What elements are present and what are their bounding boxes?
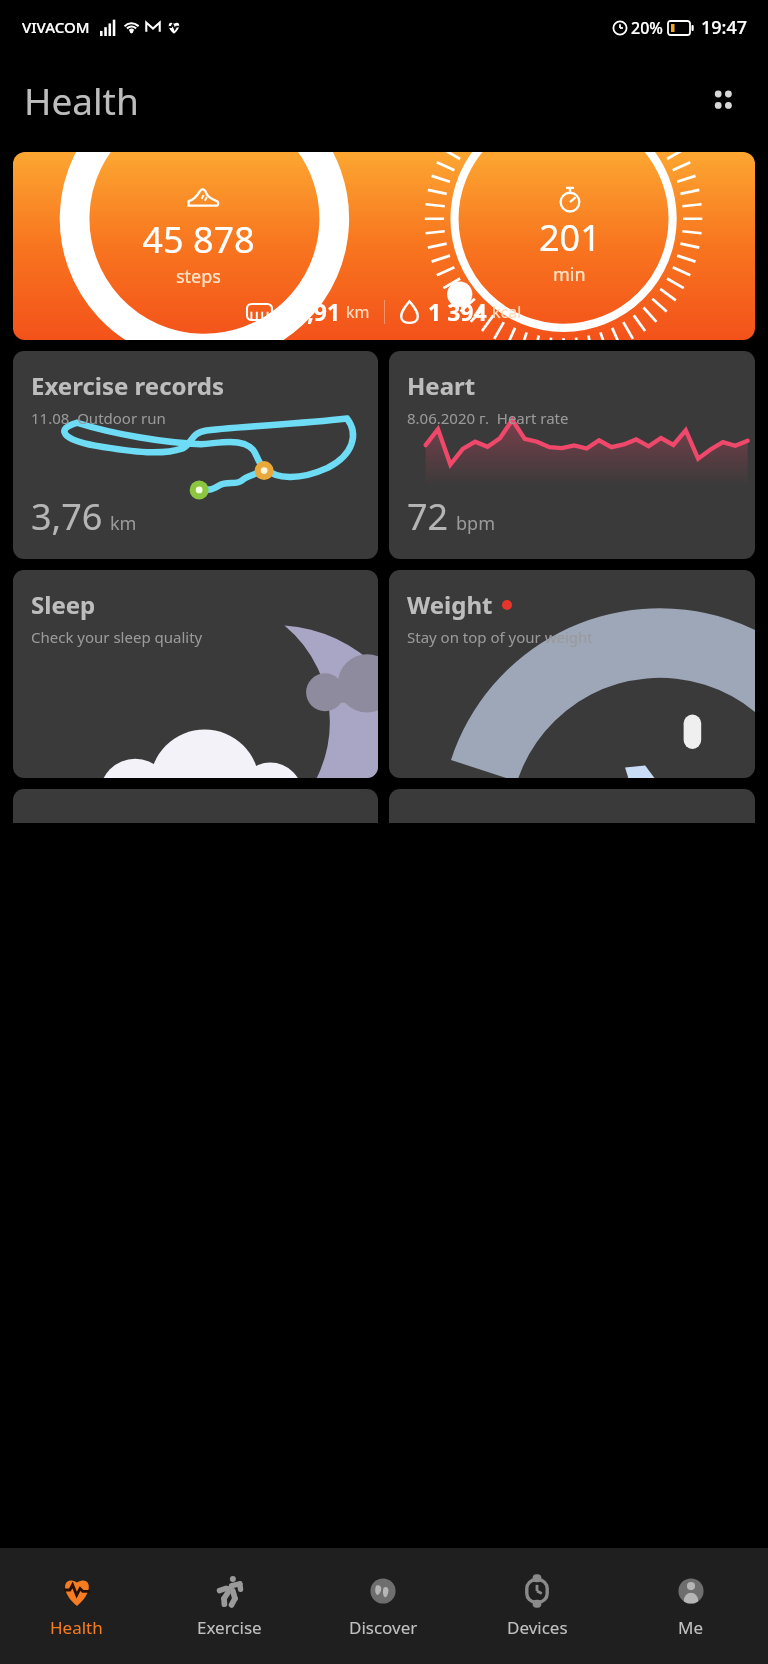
button[interactable] — [389, 789, 755, 823]
staticText: 72 — [407, 492, 449, 541]
staticText: kcal — [492, 301, 522, 323]
staticText: min — [553, 262, 586, 287]
button[interactable]: Sleep — [13, 570, 378, 778]
staticText: 45 878 — [142, 215, 255, 264]
staticText: Sleep — [31, 588, 96, 621]
button[interactable]: Health — [0, 1548, 153, 1664]
staticText: Me — [678, 1616, 704, 1639]
staticText: Health — [24, 75, 139, 125]
staticText: Weight — [407, 588, 493, 621]
staticText: Stay on top of your weight — [407, 627, 593, 647]
button[interactable]: 45 878 — [13, 152, 755, 340]
staticText: 19:47 — [701, 15, 748, 40]
staticText: steps — [176, 264, 221, 289]
button[interactable]: Exercise — [153, 1548, 306, 1664]
staticText: Discover — [349, 1616, 418, 1639]
staticText: bpm — [456, 511, 495, 536]
staticText: Heart — [407, 369, 476, 402]
button[interactable]: More options — [698, 75, 748, 125]
button[interactable]: Devices — [460, 1548, 614, 1664]
staticText: km — [346, 301, 370, 323]
staticText: Devices — [507, 1616, 568, 1639]
staticText: 1 394 — [428, 296, 487, 327]
staticText: Check your sleep quality — [31, 627, 203, 647]
button[interactable] — [13, 789, 378, 823]
staticText: Exercise records — [31, 369, 225, 402]
button[interactable]: Weight — [389, 570, 755, 778]
staticText: Exercise — [197, 1616, 262, 1639]
staticText: 201 — [539, 213, 601, 262]
staticText: Health — [50, 1616, 103, 1639]
staticText: VIVACOM — [22, 17, 90, 37]
staticText: 8.06.2020 г. Heart rate — [407, 408, 569, 428]
button[interactable]: Discover — [306, 1548, 460, 1664]
button[interactable]: Exercise records — [13, 351, 378, 559]
button[interactable]: Me — [614, 1548, 768, 1664]
staticText: 33,91 — [281, 296, 341, 327]
staticText: 3,76 — [31, 492, 103, 541]
staticText: km — [110, 511, 137, 536]
button[interactable]: Heart — [389, 351, 755, 559]
staticText: 20% — [631, 17, 663, 39]
staticText: 11.08 Outdoor run — [31, 408, 166, 428]
